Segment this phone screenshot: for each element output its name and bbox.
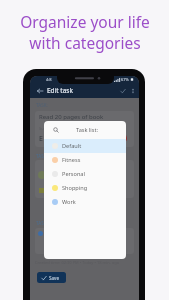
- staticText: Shopping: [62, 184, 88, 192]
- staticText: Save: [49, 275, 60, 281]
- staticText: Edit task: [47, 86, 73, 95]
- staticText: with categories: [29, 32, 141, 53]
- button[interactable]: Shopping: [44, 181, 126, 195]
- button[interactable]: More options: [128, 86, 137, 95]
- staticText: Fitness: [62, 156, 81, 164]
- button[interactable]: Work: [44, 195, 126, 209]
- staticText: Read 20 pages of book: [39, 113, 104, 121]
- staticText: Default: [62, 142, 82, 150]
- staticText: 67%: [121, 77, 129, 82]
- staticText: 4:8: [46, 77, 52, 82]
- staticText: Work: [62, 198, 76, 206]
- button[interactable]: Back: [34, 85, 45, 96]
- staticText: TASK:: [36, 102, 48, 108]
- staticText: TASK:: [36, 220, 48, 226]
- staticText: Subtask: [39, 126, 54, 131]
- staticText: E: [39, 134, 43, 144]
- staticText: Organize your life: [20, 11, 150, 32]
- button[interactable]: Personal: [44, 167, 126, 181]
- button[interactable]: Save task: [117, 85, 128, 96]
- staticText: TASK LIST:: [36, 153, 58, 159]
- button[interactable]: Fitness: [44, 153, 126, 167]
- staticText: Task list:: [76, 126, 99, 134]
- staticText: Personal: [62, 170, 85, 178]
- button[interactable]: Save: [37, 272, 66, 283]
- button[interactable]: Default: [44, 139, 126, 153]
